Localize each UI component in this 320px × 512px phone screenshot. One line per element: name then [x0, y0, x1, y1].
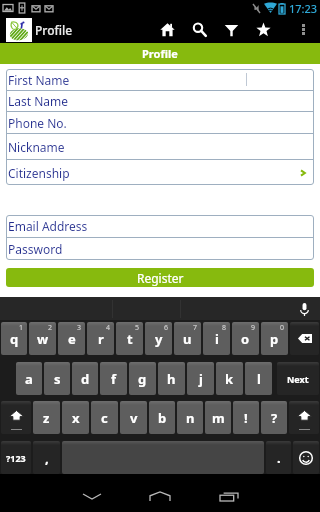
button[interactable]: d [72, 362, 98, 395]
staticText: Nickname [8, 139, 65, 155]
button[interactable]: c [91, 401, 118, 434]
button[interactable]: j [187, 362, 214, 395]
staticText: u [183, 330, 192, 348]
button[interactable]: Nickname [6, 134, 314, 159]
button[interactable]: p [261, 322, 288, 355]
staticText: o [241, 330, 250, 348]
staticText: Last Name [8, 93, 69, 109]
staticText: 6 [164, 323, 169, 333]
button[interactable]: Email Address [6, 215, 314, 237]
button[interactable]: i [203, 322, 230, 355]
button[interactable]: e [58, 322, 85, 355]
staticText: ! [244, 409, 248, 427]
staticText: d [81, 370, 90, 388]
button[interactable]: q [1, 322, 27, 355]
staticText: w [37, 330, 49, 348]
button[interactable]: Profile [0, 16, 73, 43]
button[interactable]: Space [62, 441, 264, 474]
button[interactable]: l [245, 362, 272, 395]
button[interactable]: k [216, 362, 243, 395]
button[interactable]: Phone No. [6, 112, 314, 133]
button[interactable]: Backspace [290, 322, 319, 355]
staticText: ?123 [6, 452, 26, 464]
staticText: First Name [8, 72, 70, 88]
button[interactable]: f [100, 362, 127, 395]
button[interactable]: n [177, 401, 203, 434]
staticText: s [54, 370, 61, 388]
staticText: y [155, 330, 163, 348]
staticText: m [212, 409, 225, 427]
button[interactable]: First Name [6, 69, 314, 90]
staticText: Profile [142, 46, 178, 61]
button[interactable]: g [129, 362, 156, 395]
button[interactable]: s [44, 362, 70, 395]
button[interactable]: ? [261, 401, 287, 434]
staticText: . [277, 449, 281, 467]
staticText: 2 [48, 323, 53, 333]
staticText: 0 [280, 323, 285, 333]
button[interactable]: z [33, 401, 60, 434]
button[interactable]: m [205, 401, 231, 434]
button[interactable]: Filter [215, 16, 247, 43]
staticText: Profile [35, 22, 73, 38]
staticText: r [98, 330, 104, 348]
button[interactable]: t [116, 322, 143, 355]
staticText: q [10, 330, 19, 348]
staticText: , [45, 449, 49, 467]
staticText: c [101, 409, 108, 427]
staticText: 4 [106, 323, 111, 333]
staticText: l [257, 370, 261, 388]
staticText: Phone No. [8, 115, 67, 131]
button[interactable]: Citizenship [6, 160, 314, 185]
staticText: k [225, 370, 234, 388]
button[interactable]: Favourites [247, 16, 279, 43]
staticText: 3 [77, 323, 82, 333]
button[interactable]: ?123 [1, 441, 31, 474]
button[interactable]: v [120, 401, 147, 434]
button[interactable]: Search [183, 16, 215, 43]
button[interactable]: y [145, 322, 172, 355]
staticText: a [25, 370, 33, 388]
staticText: e [68, 330, 76, 348]
staticText: h [167, 370, 176, 388]
staticText: 8 [222, 323, 227, 333]
button[interactable]: Shift [289, 401, 319, 434]
staticText: Email Address [8, 218, 88, 234]
button[interactable]: Register [6, 268, 314, 287]
button[interactable]: Recent apps [199, 474, 259, 512]
button[interactable]: Password [6, 238, 314, 260]
button[interactable]: Shift [1, 401, 31, 434]
button[interactable]: Emoji [293, 441, 319, 474]
button[interactable]: . [266, 441, 291, 474]
button[interactable]: Home [130, 474, 190, 512]
staticText: 1 [19, 323, 24, 333]
button[interactable]: Voice input [293, 298, 315, 320]
button[interactable]: Back [62, 474, 122, 512]
button[interactable]: Home [151, 16, 183, 43]
button[interactable]: Last Name [6, 91, 314, 111]
button[interactable]: w [29, 322, 56, 355]
button[interactable]: o [232, 322, 259, 355]
button[interactable]: Next [277, 362, 319, 395]
staticText: Register [137, 270, 184, 286]
button[interactable]: ! [233, 401, 259, 434]
staticText: z [43, 409, 50, 427]
staticText: v [130, 409, 138, 427]
staticText: f [111, 370, 117, 388]
button[interactable]: u [174, 322, 201, 355]
staticText: Password [8, 241, 63, 257]
staticText: ? [271, 409, 278, 427]
staticText: x [72, 409, 80, 427]
staticText: 7 [193, 323, 198, 333]
staticText: 9 [251, 323, 256, 333]
staticText: Next [287, 373, 309, 385]
staticText: t [127, 330, 133, 348]
button[interactable]: h [158, 362, 185, 395]
button[interactable]: r [87, 322, 114, 355]
button[interactable]: x [62, 401, 89, 434]
button[interactable]: , [33, 441, 60, 474]
staticText: n [186, 409, 195, 427]
button[interactable]: a [16, 362, 42, 395]
button[interactable]: b [149, 401, 175, 434]
button[interactable]: More options [292, 16, 315, 43]
